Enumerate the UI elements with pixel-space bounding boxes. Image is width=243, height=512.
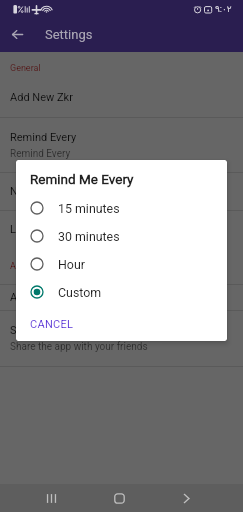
staticText: Add New Zkr — [10, 91, 73, 104]
staticText: General — [10, 63, 41, 74]
button[interactable]: Share — [0, 311, 243, 366]
button[interactable]: CANCEL — [26, 314, 78, 335]
button[interactable]: Notification — [0, 173, 243, 210]
button[interactable]: Remind Every — [0, 118, 243, 172]
staticText: Remind Every — [10, 148, 71, 160]
button[interactable]: About Us — [0, 285, 243, 310]
staticText: Language — [10, 223, 59, 236]
staticText: Hour — [58, 257, 85, 272]
staticText: About Us — [10, 291, 55, 304]
button[interactable]: Home — [106, 485, 133, 512]
button[interactable]: Custom — [16, 278, 227, 306]
button[interactable]: Back — [173, 485, 200, 512]
staticText: Remind Me Every — [30, 171, 134, 187]
button[interactable]: 15 minutes — [16, 194, 227, 222]
staticText: Share the app with your friends — [10, 341, 148, 353]
staticText: 30 minutes — [58, 229, 120, 244]
staticText: Share — [10, 324, 39, 337]
staticText: About — [10, 261, 34, 272]
staticText: ٩:٠٢ — [215, 4, 232, 15]
button[interactable]: Recents — [38, 485, 65, 512]
staticText: 15 minutes — [58, 201, 120, 216]
staticText: Notification — [10, 185, 67, 198]
button[interactable]: Language — [0, 211, 243, 248]
staticText: Settings — [45, 27, 93, 42]
button[interactable]: Hour — [16, 250, 227, 278]
staticText: Custom — [58, 285, 102, 300]
button[interactable]: 30 minutes — [16, 222, 227, 250]
button[interactable]: Add New Zkr — [0, 78, 243, 117]
button[interactable]: Back — [0, 19, 34, 50]
staticText: Remind Every — [10, 131, 77, 144]
staticText: CANCEL — [30, 318, 74, 331]
